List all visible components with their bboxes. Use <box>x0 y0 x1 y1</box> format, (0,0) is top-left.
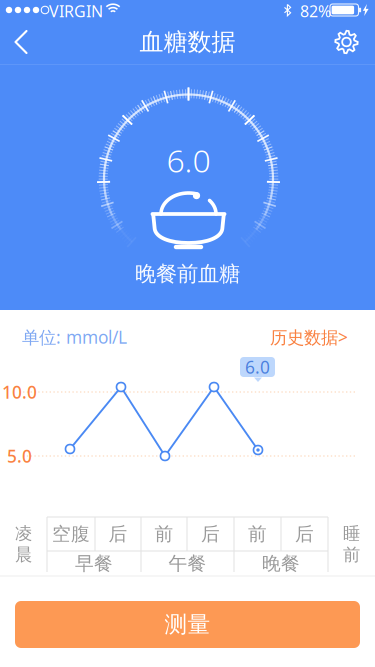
staticText: 后 <box>201 522 220 545</box>
staticText: 单位: mmol/L <box>22 325 127 348</box>
staticText: VIRGIN <box>49 0 103 22</box>
staticText: 测量 <box>164 611 210 638</box>
button[interactable]: Settings <box>314 19 375 64</box>
button[interactable]: Back <box>0 20 48 64</box>
staticText: 血糖数据 <box>139 27 235 57</box>
staticText: 早餐 <box>75 552 113 575</box>
staticText: 空腹 <box>52 522 90 545</box>
staticText: 10.0 <box>2 380 37 403</box>
staticText: 凌 晨 <box>15 523 32 565</box>
staticText: 6.0 <box>166 139 210 181</box>
staticText: 5.0 <box>7 444 32 467</box>
staticText: 后 <box>295 522 314 545</box>
staticText: 6.0 <box>245 355 270 378</box>
staticText: 历史数据> <box>270 325 348 348</box>
staticText: 晚餐 <box>262 552 300 575</box>
staticText: 82% <box>300 0 331 22</box>
button[interactable]: 历史数据> <box>266 320 375 354</box>
button[interactable]: 测量 <box>15 601 360 648</box>
staticText: 前 <box>154 522 173 545</box>
staticText: 睡 前 <box>343 523 360 565</box>
staticText: 后 <box>108 522 127 545</box>
staticText: 晚餐前血糖 <box>135 261 240 287</box>
staticText: 前 <box>248 522 267 545</box>
staticText: 午餐 <box>168 552 206 575</box>
